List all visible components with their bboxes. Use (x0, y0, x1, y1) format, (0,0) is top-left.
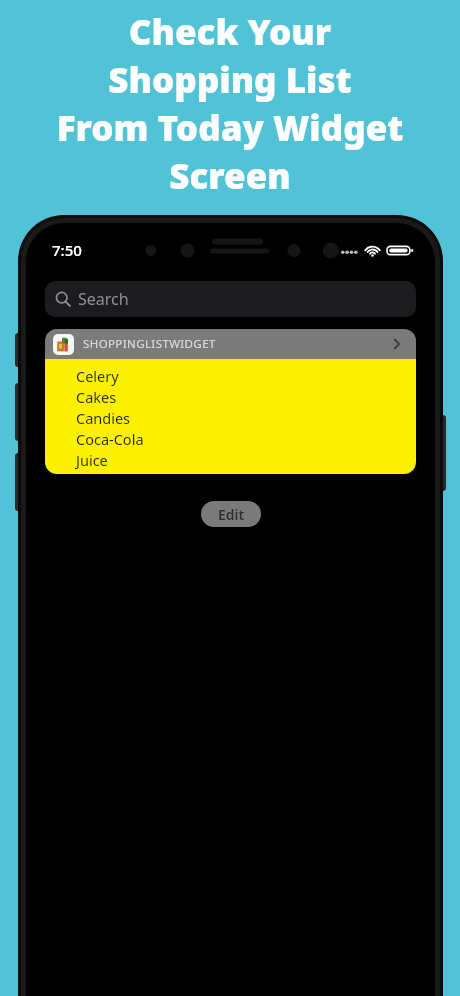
staticText: Screen (0, 152, 460, 200)
other: Open widget (388, 335, 406, 353)
staticText: Check Your (0, 8, 460, 56)
staticText: Candies (76, 408, 131, 428)
staticText: Celery (76, 366, 119, 386)
staticText: Cakes (76, 387, 117, 407)
button[interactable]: SHOPPINGLISTWIDGET (45, 329, 416, 359)
staticText: Juice (76, 450, 108, 470)
staticText: SHOPPINGLISTWIDGET (83, 336, 216, 352)
staticText: Search (78, 288, 129, 310)
staticText: Edit (218, 505, 245, 524)
staticText: Shopping List (0, 56, 460, 104)
button[interactable]: Celery (45, 359, 416, 474)
staticText: 7:50 (52, 240, 82, 260)
button[interactable]: Edit (201, 501, 261, 527)
staticText: Coca-Cola (76, 429, 144, 449)
button[interactable]: Search (45, 281, 416, 317)
staticText: From Today Widget (0, 104, 460, 152)
